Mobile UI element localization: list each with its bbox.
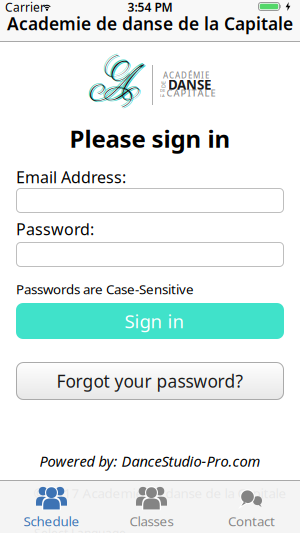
staticText: Classes [129,512,173,530]
staticText: C A P I T A L E [166,87,215,99]
staticText: Schedule [23,512,79,530]
staticText: A C A D É M I E [163,70,209,81]
staticText: LA [160,93,165,98]
staticText: DE [160,88,165,93]
staticText: DE [160,81,167,88]
staticText: Password: [16,218,94,240]
staticText: Sign in [124,309,184,333]
button[interactable]: Classes [101,478,201,533]
button[interactable]: Forgot your password? [16,362,284,400]
staticText: DANSE [168,76,211,93]
button[interactable]: Contact [201,478,300,533]
staticText: Carrier [5,0,45,15]
staticText: A [82,50,146,121]
staticText: Passwords are Case-Sensitive [16,280,194,298]
staticText: Please sign in [69,123,230,154]
staticText: 3:54 PM [127,0,172,15]
staticText: Forgot your password? [56,369,243,392]
staticText: A [83,52,147,122]
button[interactable]: Schedule [1,478,101,533]
button[interactable]: Sign in [16,303,284,339]
staticText: Select Language [34,525,126,533]
staticText: Email Address: [16,166,126,188]
staticText: A [84,53,148,124]
staticText: Powered by: DanceStudio-Pro.com [39,451,260,471]
staticText: Contact [228,512,275,530]
staticText: Academie de danse de la Capitale [7,12,293,35]
staticText: © 2017 Academie de danse de la Capitale [33,484,286,502]
